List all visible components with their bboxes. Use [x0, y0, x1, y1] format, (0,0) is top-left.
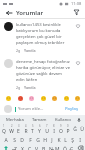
staticText: P: [66, 128, 70, 135]
button[interactable]: 8: [50, 124, 57, 135]
staticText: 9: [60, 124, 62, 128]
button[interactable]: Ş: [69, 135, 76, 146]
button[interactable]: Emoji: [17, 95, 23, 101]
staticText: Yorum ekle...: [18, 106, 44, 112]
staticText: V: [35, 146, 39, 150]
button[interactable]: 5: [29, 124, 36, 135]
staticText: kullanıcı1453 kesinlikle katılıyorum bu …: [16, 22, 71, 46]
button[interactable]: 0: [64, 124, 71, 135]
staticText: I: [53, 128, 55, 135]
button[interactable]: Emoji: [51, 95, 57, 101]
button[interactable]: Filter: [72, 8, 81, 17]
button[interactable]: Yorum ekle...: [15, 105, 63, 113]
button[interactable]: M: [54, 146, 61, 150]
staticText: Yorumlar: [16, 9, 44, 17]
button[interactable]: Ö: [61, 146, 68, 150]
staticText: H: [43, 137, 47, 144]
staticText: 1: [3, 124, 5, 128]
staticText: Merhaba: [6, 117, 24, 123]
staticText: O: [59, 128, 63, 135]
button[interactable]: H: [41, 135, 48, 146]
button[interactable]: I: [76, 135, 83, 146]
button[interactable]: Emoji: [63, 95, 69, 101]
staticText: J: [51, 137, 53, 144]
button[interactable]: Z: [11, 146, 19, 150]
staticText: Paylaş: [65, 106, 79, 112]
button[interactable]: A: [2, 135, 10, 146]
button[interactable]: Emoji: [74, 95, 80, 101]
button[interactable]: B: [40, 146, 47, 150]
button[interactable]: 1: [0, 124, 8, 135]
staticText: 5: [32, 124, 34, 128]
staticText: N: [49, 146, 53, 150]
staticText: Y: [38, 128, 41, 135]
staticText: Q: [2, 128, 6, 135]
button[interactable]: S: [10, 135, 18, 146]
button[interactable]: Ç: [68, 146, 75, 150]
button[interactable]: Shift: [0, 146, 11, 150]
staticText: deneme_hesap fotoğrafınız harika görünüy…: [16, 59, 71, 83]
button[interactable]: Tamam: [27, 115, 51, 124]
staticText: Yanıtla: [24, 85, 36, 90]
staticText: Ö: [63, 146, 67, 150]
button[interactable]: kullanıcı1453 kesinlikle katılıyorum bu …: [0, 19, 85, 56]
button[interactable]: Emoji: [5, 95, 11, 101]
staticText: S: [13, 137, 16, 144]
button[interactable]: 9: [57, 124, 64, 135]
staticText: G: [36, 137, 40, 144]
button[interactable]: Like: [74, 22, 81, 29]
button[interactable]: 7: [43, 124, 50, 135]
staticText: 6: [39, 124, 41, 128]
button[interactable]: 3: [15, 124, 22, 135]
button[interactable]: Emoji: [28, 95, 34, 101]
staticText: D: [20, 137, 24, 144]
button[interactable]: Ğ: [71, 124, 78, 135]
button[interactable]: D: [18, 135, 26, 146]
button[interactable]: F: [26, 135, 34, 146]
staticText: R: [24, 128, 28, 135]
button[interactable]: 6: [36, 124, 43, 135]
staticText: L: [64, 137, 67, 144]
staticText: W: [9, 128, 14, 135]
staticText: 2g: [16, 85, 21, 90]
button[interactable]: J: [48, 135, 55, 146]
button[interactable]: deneme_hesap fotoğrafınız harika görünüy…: [0, 56, 85, 93]
button[interactable]: Merhaba: [3, 115, 27, 124]
staticText: Ğ: [73, 126, 77, 133]
button[interactable]: V: [33, 146, 40, 150]
button[interactable]: Voice input: [75, 115, 82, 124]
staticText: 8: [53, 124, 55, 128]
button[interactable]: G: [34, 135, 41, 146]
staticText: E: [17, 128, 20, 135]
button[interactable]: 2: [8, 124, 15, 135]
staticText: B: [42, 146, 46, 150]
button[interactable]: Back: [4, 8, 13, 17]
staticText: 4: [25, 124, 27, 128]
staticText: Ç: [70, 146, 74, 150]
staticText: T: [31, 128, 34, 135]
staticText: F: [29, 137, 32, 144]
staticText: Ü: [80, 126, 84, 133]
button[interactable]: K: [55, 135, 62, 146]
button[interactable]: Kullanıcı: [51, 115, 75, 124]
staticText: K: [57, 137, 61, 144]
button[interactable]: Paylaş: [63, 105, 81, 113]
staticText: Tamam: [32, 117, 47, 123]
button[interactable]: X: [19, 146, 26, 150]
button[interactable]: L: [62, 135, 69, 146]
staticText: I: [79, 137, 81, 144]
staticText: 11:08: [71, 1, 82, 6]
staticText: Kullanıcı: [55, 117, 72, 123]
staticText: 3: [18, 124, 20, 128]
button[interactable]: 4: [22, 124, 29, 135]
staticText: C: [28, 146, 32, 150]
button[interactable]: Emoji: [40, 95, 46, 101]
button[interactable]: N: [47, 146, 54, 150]
button[interactable]: C: [26, 146, 33, 150]
staticText: X: [21, 146, 24, 150]
staticText: M: [55, 146, 60, 150]
button[interactable]: Like: [74, 59, 81, 66]
button[interactable]: Backspace: [75, 146, 85, 150]
button[interactable]: Ü: [78, 124, 85, 135]
staticText: 2g: [16, 48, 21, 53]
